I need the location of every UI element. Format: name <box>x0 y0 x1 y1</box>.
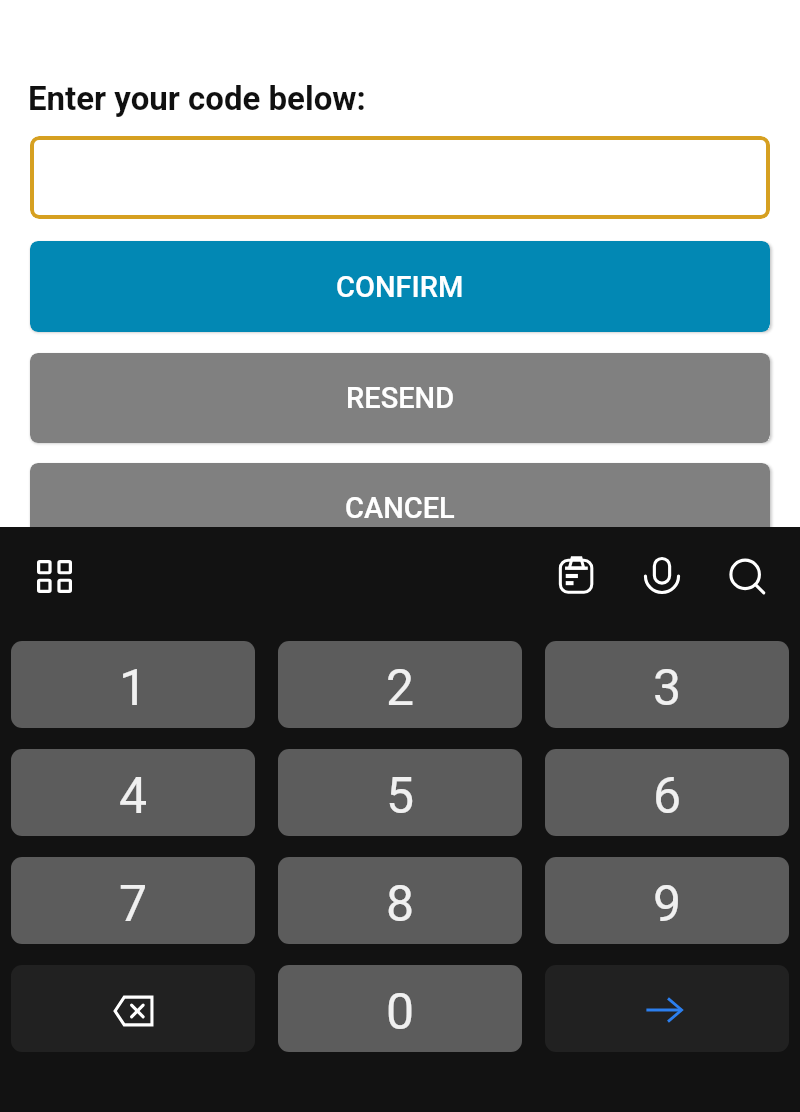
button[interactable]: 5 <box>278 749 522 836</box>
button[interactable]: RESEND <box>30 353 770 443</box>
button[interactable]: 7 <box>11 857 255 944</box>
button[interactable] <box>30 136 770 219</box>
button[interactable]: 0 <box>278 965 522 1052</box>
staticText: 6 <box>653 767 682 826</box>
button[interactable]: Voice input <box>636 550 688 602</box>
staticText: 3 <box>653 659 682 718</box>
button[interactable]: 2 <box>278 641 522 728</box>
staticText: 8 <box>386 875 415 934</box>
button[interactable]: 9 <box>545 857 789 944</box>
button[interactable]: 3 <box>545 641 789 728</box>
staticText: 5 <box>386 767 415 826</box>
button[interactable]: CONFIRM <box>30 241 770 332</box>
staticText: 2 <box>386 659 415 718</box>
button[interactable]: 6 <box>545 749 789 836</box>
staticText: 4 <box>119 767 148 826</box>
button[interactable]: Backspace <box>11 965 255 1052</box>
staticText: Enter your code below: <box>28 79 366 118</box>
button[interactable]: CANCEL <box>30 463 770 553</box>
button[interactable]: Search <box>721 550 773 602</box>
button[interactable]: Keyboard layouts <box>29 551 79 601</box>
button[interactable]: Clipboard <box>551 550 603 602</box>
staticText: 1 <box>119 659 148 718</box>
button[interactable]: 4 <box>11 749 255 836</box>
button[interactable]: Enter <box>545 965 789 1052</box>
button[interactable]: 8 <box>278 857 522 944</box>
button[interactable]: 1 <box>11 641 255 728</box>
staticText: CONFIRM <box>336 270 464 304</box>
staticText: 0 <box>386 983 415 1042</box>
staticText: CANCEL <box>345 491 455 525</box>
staticText: 9 <box>653 875 682 934</box>
staticText: 7 <box>119 875 148 934</box>
staticText: RESEND <box>346 381 455 415</box>
